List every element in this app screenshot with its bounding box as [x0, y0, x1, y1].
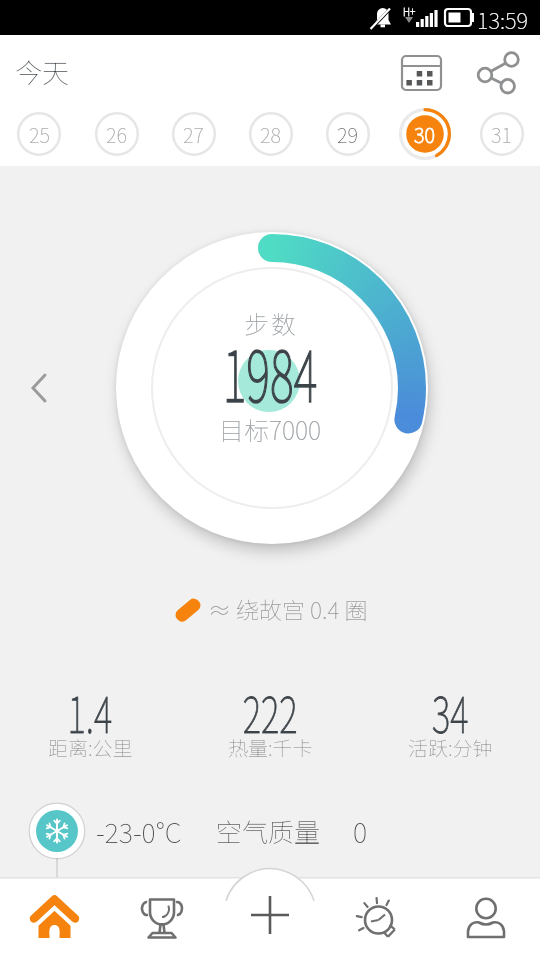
button[interactable] [338, 878, 418, 958]
staticText: 28 [260, 120, 281, 149]
button[interactable]: 26 [78, 100, 155, 168]
staticText: 222 [243, 675, 298, 747]
staticText: 热量:千卡 [228, 733, 313, 762]
staticText: 0 [353, 812, 368, 851]
staticText: 26 [106, 120, 127, 149]
staticText: 34 [432, 675, 469, 747]
staticText: 1.4 [68, 675, 112, 747]
button[interactable] [226, 871, 314, 959]
button[interactable] [470, 47, 532, 97]
staticText: 222 [243, 675, 298, 747]
button[interactable] [122, 878, 202, 958]
staticText: 31 [491, 120, 512, 149]
staticText: 25 [29, 120, 50, 149]
staticText: 空气质量 [216, 812, 321, 850]
staticText: H+ [403, 4, 416, 18]
staticText: 1984 [223, 320, 317, 423]
staticText: 29 [337, 120, 358, 149]
staticText: 今天 [15, 52, 69, 91]
staticText: 34 [432, 675, 469, 747]
staticText: 步数 [244, 305, 299, 341]
button[interactable] [392, 47, 450, 92]
button[interactable] [15, 878, 95, 958]
button[interactable] [445, 878, 525, 958]
staticText: 目标7000 [219, 411, 322, 447]
button[interactable]: 28 [232, 100, 309, 168]
staticText: 1984 [223, 320, 317, 423]
staticText: ≈ 绕故宫 0.4 圈 [208, 592, 368, 625]
staticText: -23-0°C [96, 812, 182, 851]
button[interactable] [0, 803, 540, 863]
staticText: 1.4 [68, 675, 112, 747]
staticText: 活跃:分钟 [408, 733, 493, 762]
button[interactable]: 25 [0, 100, 78, 168]
button[interactable]: ≈ 绕故宫 0.4 圈 [0, 590, 540, 626]
staticText: 13:59 [477, 3, 528, 35]
button[interactable]: 27 [155, 100, 232, 168]
button[interactable]: 29 [309, 100, 386, 168]
staticText: 30 [414, 120, 435, 149]
staticText: 27 [183, 120, 204, 149]
button[interactable]: 30 [386, 100, 463, 168]
button[interactable]: 31 [463, 100, 540, 168]
staticText: 距离:公里 [48, 733, 133, 762]
